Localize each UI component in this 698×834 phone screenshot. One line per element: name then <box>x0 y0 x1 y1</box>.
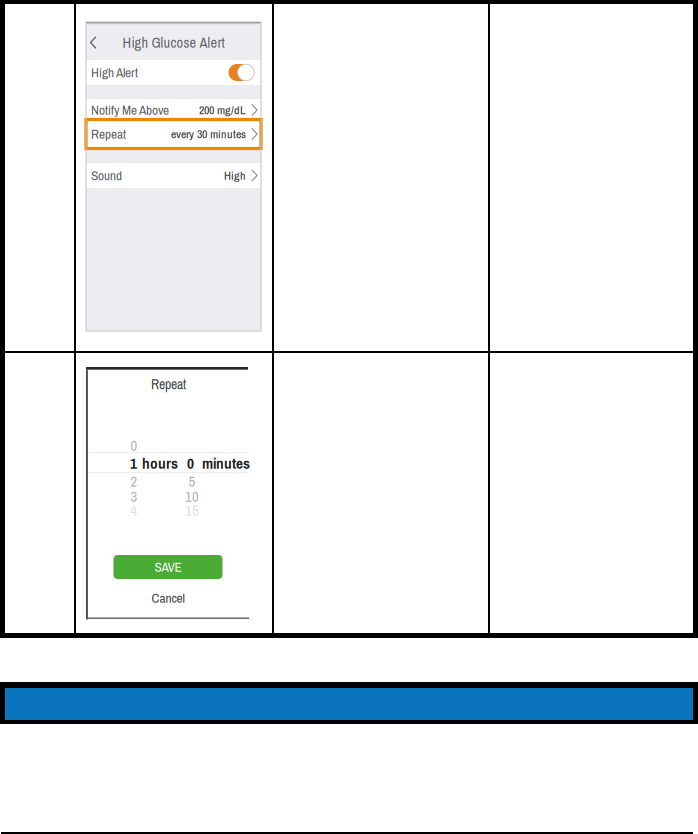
staticText: 200 mg/dL <box>199 102 246 118</box>
staticText: SAVE <box>154 558 181 576</box>
staticText: Repeat <box>151 375 186 393</box>
staticText: every 30 minutes <box>171 126 246 142</box>
staticText: High <box>224 168 246 183</box>
staticText: 10 <box>185 486 199 506</box>
button[interactable]: SAVE <box>113 555 222 579</box>
staticText: Notify Me Above <box>91 101 169 119</box>
staticText: 4 <box>130 500 137 520</box>
staticText: hours <box>142 453 178 474</box>
button[interactable]: Sound <box>86 163 261 188</box>
staticText: 0 <box>187 453 194 474</box>
staticText: Sound <box>91 166 122 184</box>
staticText: 3 <box>130 486 137 506</box>
button[interactable]: Cancel <box>113 590 222 606</box>
staticText: Repeat <box>91 125 126 143</box>
button[interactable]: Notify Me Above <box>86 99 261 121</box>
staticText: 5 <box>188 471 195 491</box>
staticText: 1 <box>130 453 137 474</box>
button[interactable]: Repeat <box>86 121 261 147</box>
staticText: 0 <box>130 435 137 455</box>
staticText: High Glucose Alert <box>122 33 224 52</box>
staticText: Cancel <box>151 589 184 607</box>
button[interactable]: High Alert <box>86 60 261 85</box>
staticText: High Alert <box>91 63 138 81</box>
staticText: 15 <box>185 500 199 520</box>
button[interactable]: Back <box>86 25 100 60</box>
staticText: 2 <box>130 471 137 491</box>
staticText: minutes <box>202 453 250 474</box>
